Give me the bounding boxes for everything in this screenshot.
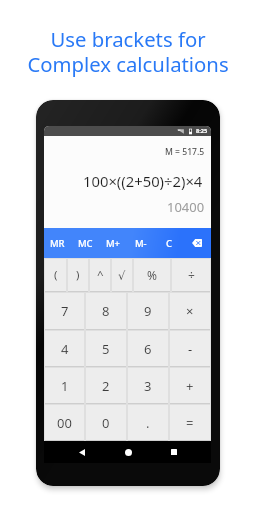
button[interactable]: MC (71, 228, 99, 258)
button[interactable]: - (170, 331, 210, 366)
staticText: + (186, 377, 194, 395)
button[interactable]: ^ (90, 259, 110, 291)
button[interactable]: + (170, 368, 210, 403)
staticText: C (166, 237, 172, 250)
staticText: ) (76, 267, 80, 283)
staticText: MC (78, 237, 93, 250)
staticText: 00 (57, 414, 72, 432)
button[interactable]: ( (45, 259, 66, 291)
staticText: Use brackets for Complex calculations (0, 25, 256, 78)
staticText: 7 (61, 302, 69, 320)
button[interactable]: 00 (45, 405, 84, 440)
staticText: 100×((2+50)÷2)×4 (83, 171, 203, 191)
button[interactable]: M- (127, 228, 155, 258)
button[interactable]: 4 (45, 331, 84, 366)
button[interactable]: M+ (99, 228, 127, 258)
staticText: MR (50, 237, 65, 250)
staticText: ÷ (188, 267, 195, 283)
staticText: 0 (102, 414, 110, 432)
staticText: M = 517.5 (165, 146, 205, 158)
staticText: 10400 (167, 198, 205, 216)
staticText: ^ (97, 267, 104, 283)
button[interactable]: C (155, 228, 183, 258)
button[interactable]: 2 (86, 368, 126, 403)
button[interactable]: = (170, 405, 210, 440)
button[interactable]: ) (68, 259, 88, 291)
staticText: 9 (144, 302, 152, 320)
staticText: % (147, 267, 157, 283)
button[interactable]: 1 (45, 368, 84, 403)
button[interactable]: Home (112, 441, 144, 463)
button[interactable]: 5 (86, 331, 126, 366)
staticText: 6 (144, 340, 152, 358)
staticText: 8:25 (196, 127, 208, 135)
button[interactable]: √ (112, 259, 132, 291)
button[interactable]: MR (44, 228, 71, 258)
button[interactable]: Backspace (183, 228, 211, 258)
button[interactable]: % (134, 259, 170, 291)
button[interactable]: ÷ (172, 259, 210, 291)
staticText: 5 (102, 340, 110, 358)
staticText: - (188, 340, 193, 358)
button[interactable]: . (128, 405, 168, 440)
staticText: 4 (61, 340, 69, 358)
button[interactable]: 0 (86, 405, 126, 440)
button[interactable]: 3 (128, 368, 168, 403)
staticText: 3 (144, 377, 152, 395)
staticText: M- (135, 237, 147, 250)
staticText: M+ (106, 237, 120, 250)
button[interactable]: 8 (86, 293, 126, 329)
button[interactable]: Back (66, 441, 98, 463)
button[interactable]: 7 (45, 293, 84, 329)
staticText: ( (54, 267, 58, 283)
button[interactable]: 9 (128, 293, 168, 329)
staticText: 8 (102, 302, 110, 320)
button[interactable]: Recents (158, 441, 190, 463)
staticText: . (146, 414, 150, 432)
staticText: √ (118, 269, 126, 282)
staticText: × (186, 302, 194, 320)
button[interactable]: 6 (128, 331, 168, 366)
staticText: 2 (102, 377, 110, 395)
button[interactable]: × (170, 293, 210, 329)
staticText: = (186, 414, 194, 432)
staticText: 1 (61, 377, 69, 395)
